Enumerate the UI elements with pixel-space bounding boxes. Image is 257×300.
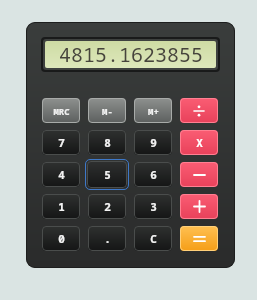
staticText: 4 bbox=[58, 167, 65, 182]
button[interactable]: M+ bbox=[134, 98, 172, 123]
staticText: 8 bbox=[104, 135, 111, 150]
button[interactable]: C bbox=[134, 226, 172, 251]
button[interactable]: 7 bbox=[42, 130, 80, 155]
staticText: . bbox=[104, 231, 111, 246]
button[interactable]: MRC bbox=[42, 98, 80, 123]
staticText: 6 bbox=[150, 167, 157, 182]
staticText: X bbox=[196, 135, 203, 150]
staticText: C bbox=[150, 231, 157, 246]
staticText: 1 bbox=[58, 199, 65, 214]
staticText: 0 bbox=[58, 231, 65, 246]
button[interactable]: 3 bbox=[134, 194, 172, 219]
staticText: 3 bbox=[150, 199, 157, 214]
button[interactable]: 2 bbox=[88, 194, 126, 219]
button[interactable]: 0 bbox=[42, 226, 80, 251]
staticText: 5 bbox=[104, 167, 111, 182]
staticText: 7 bbox=[58, 135, 65, 150]
button[interactable]: Divide bbox=[180, 98, 218, 123]
button[interactable]: X bbox=[180, 130, 218, 155]
staticText: 9 bbox=[150, 135, 157, 150]
button[interactable]: M- bbox=[88, 98, 126, 123]
button[interactable]: Minus bbox=[180, 162, 218, 187]
staticText: M- bbox=[102, 105, 113, 117]
button[interactable]: Equals bbox=[180, 226, 218, 251]
button[interactable]: . bbox=[88, 226, 126, 251]
button[interactable]: 8 bbox=[88, 130, 126, 155]
staticText: M+ bbox=[148, 105, 159, 117]
button[interactable]: 6 bbox=[134, 162, 172, 187]
button[interactable]: Plus bbox=[180, 194, 218, 219]
staticText: 4815.1623855 bbox=[59, 41, 203, 68]
button[interactable]: 5 bbox=[87, 161, 127, 188]
staticText: MRC bbox=[53, 105, 70, 117]
staticText: 2 bbox=[104, 199, 111, 214]
button[interactable]: 1 bbox=[42, 194, 80, 219]
button[interactable]: 4 bbox=[42, 162, 80, 187]
button[interactable]: 9 bbox=[134, 130, 172, 155]
